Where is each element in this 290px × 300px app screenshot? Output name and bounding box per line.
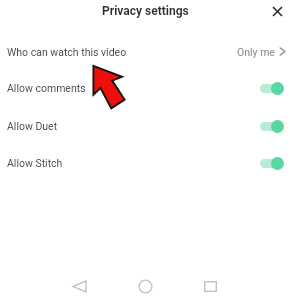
button[interactable]: Allow Duet bbox=[0, 108, 290, 144]
button[interactable]: Allow Stitch bbox=[0, 145, 290, 181]
button[interactable]: Back bbox=[66, 273, 92, 299]
button[interactable]: Allow comments bbox=[0, 70, 290, 106]
staticText: Only me bbox=[237, 46, 275, 58]
staticText: Allow comments bbox=[7, 82, 86, 94]
staticText: Who can watch this video bbox=[7, 46, 127, 58]
button[interactable]: Recent apps bbox=[197, 273, 223, 299]
staticText: Allow Duet bbox=[7, 120, 58, 132]
button[interactable]: Who can watch this video bbox=[0, 36, 290, 68]
staticText: Allow Stitch bbox=[7, 157, 63, 169]
staticText: Privacy settings bbox=[102, 4, 189, 18]
button[interactable]: Home bbox=[132, 273, 158, 299]
button[interactable]: Close bbox=[267, 1, 287, 21]
